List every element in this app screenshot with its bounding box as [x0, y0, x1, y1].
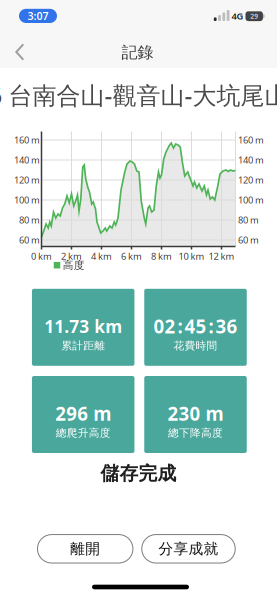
staticText: 離開 [70, 540, 100, 558]
button[interactable]: 離開 [37, 534, 133, 563]
button[interactable]: 分享成就 [142, 534, 235, 563]
staticText: 140 m [238, 154, 264, 166]
staticText: 0 km [31, 250, 52, 262]
staticText: 4G [231, 10, 243, 22]
staticText: 120 m [238, 174, 264, 186]
staticText: 分享成就 [158, 540, 218, 558]
button[interactable]: Back [0, 0, 277, 600]
staticText: 6 km [121, 250, 142, 262]
staticText: 總爬升高度 [56, 426, 111, 439]
staticText: 記錄 [122, 42, 154, 62]
staticText: 100 m [238, 194, 264, 206]
staticText: 29 [250, 12, 258, 21]
staticText: 2 km [61, 250, 82, 262]
staticText: 10 km [178, 250, 204, 262]
staticText: 296 m [55, 401, 111, 426]
staticText: 6 台南合山-觀音山-大坑尾山 [0, 79, 277, 111]
staticText: 160 m [14, 134, 40, 146]
staticText: 80 m [238, 214, 259, 226]
staticText: 4 km [91, 250, 112, 262]
staticText: 累計距離 [61, 339, 105, 352]
staticText: 02 : 45 : 36 [153, 314, 237, 339]
staticText: 160 m [238, 134, 264, 146]
staticText: 花費時間 [173, 339, 217, 352]
staticText: 230 m [167, 401, 223, 426]
staticText: 120 m [14, 174, 40, 186]
staticText: 11.73 km [44, 315, 122, 338]
staticText: 60 m [238, 234, 259, 246]
staticText: 儲存完成 [100, 462, 176, 485]
staticText: 3:07 [27, 9, 48, 23]
staticText: 8 km [151, 250, 172, 262]
staticText: 高度 [63, 259, 85, 272]
staticText: 總下降高度 [168, 426, 223, 439]
staticText: 12 km [208, 250, 234, 262]
staticText: 60 m [19, 234, 40, 246]
staticText: 140 m [14, 154, 40, 166]
staticText: 80 m [19, 214, 40, 226]
staticText: 100 m [14, 194, 40, 206]
